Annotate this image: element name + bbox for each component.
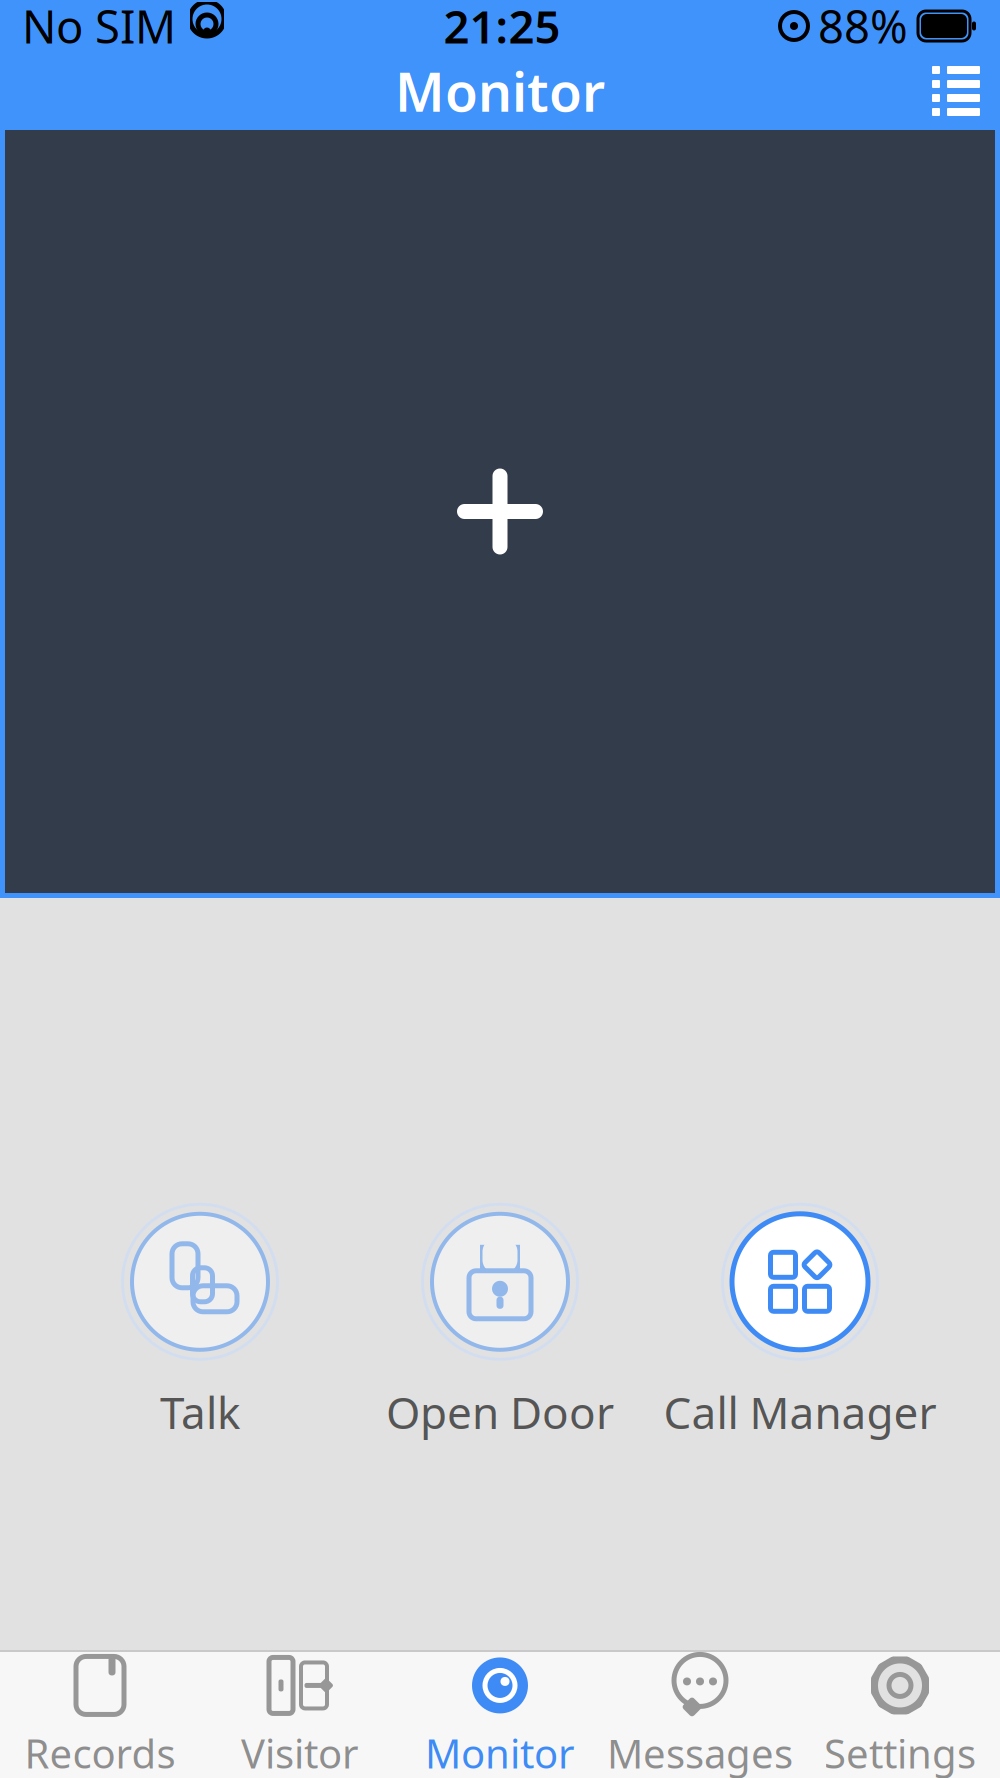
button[interactable]: Visitor [200,1640,400,1778]
staticText: Call Manager [663,1383,936,1441]
button[interactable]: Device list [912,51,1000,131]
button[interactable]: Monitor [400,1640,600,1778]
staticText: Monitor [425,1726,575,1778]
button[interactable]: Settings [800,1640,1000,1778]
button[interactable]: Talk [50,1203,350,1441]
button[interactable]: Messages [600,1640,800,1778]
staticText: No SIM [22,0,176,56]
staticText: 88% [818,0,908,56]
staticText: Open Door [386,1383,614,1441]
staticText: 21:25 [443,0,560,56]
staticText: Records [24,1726,175,1778]
button[interactable]: Call Manager [650,1203,950,1441]
staticText: Settings [824,1726,976,1778]
button[interactable]: Open Door [350,1203,650,1441]
button[interactable]: Add monitor device [0,130,1000,898]
staticText: Messages [607,1726,793,1778]
staticText: Visitor [241,1726,359,1778]
staticText: Talk [160,1383,240,1441]
staticText: Monitor [395,56,605,126]
button[interactable]: Records [0,1640,200,1778]
